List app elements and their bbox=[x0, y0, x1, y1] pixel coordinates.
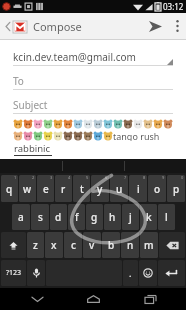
button[interactable]: Voice input bbox=[27, 260, 45, 286]
button[interactable]: p bbox=[167, 175, 185, 202]
button[interactable]: To bbox=[13, 72, 173, 89]
button[interactable]: g bbox=[86, 204, 103, 230]
button[interactable]: Send bbox=[142, 13, 168, 39]
staticText: q bbox=[6, 182, 13, 196]
staticText: 8 bbox=[143, 175, 146, 180]
staticText: x bbox=[51, 238, 57, 252]
button[interactable]: tango rush bbox=[13, 118, 173, 159]
staticText: p bbox=[173, 182, 180, 196]
button[interactable]: c bbox=[64, 232, 82, 258]
button[interactable]: q bbox=[1, 175, 18, 202]
staticText: u bbox=[116, 182, 123, 196]
button[interactable]: b bbox=[102, 232, 120, 258]
staticText: j bbox=[129, 210, 132, 224]
button[interactable]: i bbox=[129, 175, 147, 202]
button[interactable]: More options bbox=[168, 13, 186, 39]
staticText: 3 bbox=[50, 175, 53, 180]
staticText: s bbox=[38, 210, 43, 224]
button[interactable]: Emoji bbox=[139, 260, 157, 286]
staticText: ?123 bbox=[6, 268, 22, 278]
button[interactable]: x bbox=[45, 232, 63, 258]
button[interactable]: h bbox=[104, 204, 121, 230]
button[interactable]: t bbox=[73, 175, 90, 202]
staticText: i bbox=[137, 182, 140, 196]
staticText: . bbox=[129, 267, 132, 279]
button[interactable]: Period bbox=[123, 260, 138, 286]
staticText: b bbox=[108, 238, 115, 252]
staticText: To bbox=[13, 74, 24, 88]
staticText: z bbox=[33, 238, 38, 252]
staticText: o bbox=[154, 182, 161, 196]
button[interactable]: Home bbox=[73, 288, 113, 310]
staticText: c bbox=[71, 238, 76, 252]
button[interactable]: a bbox=[12, 204, 30, 230]
staticText: 0 bbox=[181, 175, 184, 180]
staticText: y bbox=[97, 182, 103, 196]
button[interactable]: k bbox=[140, 204, 157, 230]
staticText: kcin.dev.team@gmail.com bbox=[13, 50, 136, 64]
staticText: 1 bbox=[14, 175, 17, 180]
staticText: 2 bbox=[32, 175, 35, 180]
button[interactable]: w bbox=[19, 175, 36, 202]
staticText: f bbox=[75, 210, 79, 224]
button[interactable]: l bbox=[158, 204, 175, 230]
button[interactable]: Enter bbox=[158, 260, 185, 286]
staticText: Subject bbox=[13, 98, 48, 112]
staticText: d bbox=[55, 210, 62, 224]
staticText: 6 bbox=[105, 175, 108, 180]
button[interactable]: n bbox=[121, 232, 139, 258]
staticText: 7 bbox=[124, 175, 127, 180]
staticText: g bbox=[91, 210, 98, 224]
staticText: n bbox=[127, 238, 134, 252]
staticText: t bbox=[80, 182, 84, 196]
button[interactable]: Symbols bbox=[1, 260, 26, 286]
button[interactable]: s bbox=[31, 204, 49, 230]
button[interactable]: u bbox=[110, 175, 128, 202]
staticText: w bbox=[23, 182, 32, 196]
button[interactable]: m bbox=[140, 232, 158, 258]
staticText: 9 bbox=[162, 175, 165, 180]
staticText: l bbox=[165, 210, 168, 224]
button[interactable]: y bbox=[91, 175, 109, 202]
staticText: r bbox=[61, 182, 66, 196]
staticText: 03:12 bbox=[163, 1, 184, 12]
button[interactable]: o bbox=[148, 175, 166, 202]
staticText: h bbox=[109, 210, 116, 224]
button[interactable]: kcin.dev.team@gmail.com bbox=[13, 48, 173, 65]
staticText: v bbox=[89, 238, 95, 252]
staticText: k bbox=[146, 210, 152, 224]
staticText: rabbinic bbox=[14, 142, 51, 155]
button[interactable]: v bbox=[83, 232, 101, 258]
button[interactable]: j bbox=[122, 204, 139, 230]
button[interactable]: r bbox=[55, 175, 72, 202]
staticText: Compose bbox=[33, 19, 82, 34]
button[interactable]: Shift bbox=[1, 232, 26, 258]
staticText: 4 bbox=[68, 175, 71, 180]
staticText: m bbox=[144, 238, 154, 252]
button[interactable]: e bbox=[37, 175, 54, 202]
button[interactable]: f bbox=[68, 204, 85, 230]
button[interactable]: d bbox=[50, 204, 67, 230]
staticText: e bbox=[43, 182, 49, 196]
button[interactable]: Recent apps bbox=[130, 288, 170, 310]
staticText: tango rush bbox=[113, 130, 160, 141]
button[interactable]: Backspace bbox=[159, 232, 185, 258]
button[interactable]: Subject bbox=[13, 96, 173, 113]
staticText: 5 bbox=[86, 175, 89, 180]
button[interactable]: z bbox=[27, 232, 44, 258]
button[interactable]: Compose bbox=[3, 17, 84, 36]
button[interactable]: Back bbox=[17, 288, 57, 310]
staticText: a bbox=[18, 210, 24, 224]
